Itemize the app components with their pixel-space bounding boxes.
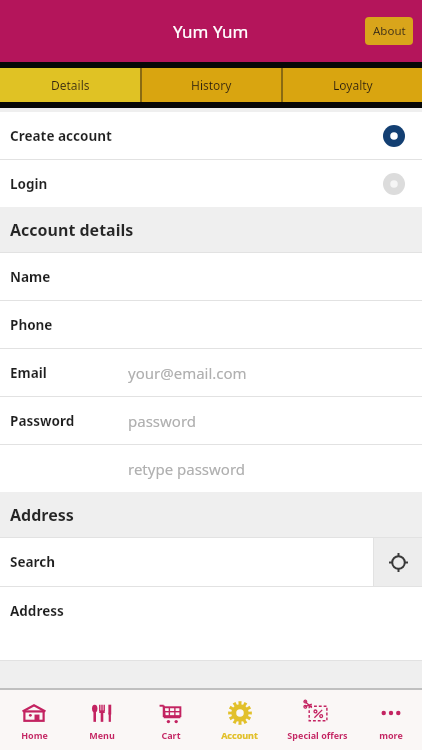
button[interactable]: Use my location (374, 538, 422, 586)
button[interactable]: more (360, 690, 422, 750)
staticText: Account details (10, 219, 134, 241)
staticText: Yum Yum (173, 20, 249, 43)
button[interactable]: Email (0, 349, 422, 396)
staticText: Menu (89, 729, 115, 741)
staticText: Home (21, 729, 48, 741)
button[interactable]: Account (205, 690, 274, 750)
staticText: Details (51, 77, 90, 93)
staticText: Address (10, 504, 74, 526)
button[interactable]: retype password (0, 445, 422, 492)
staticText: Cart (161, 729, 181, 741)
button[interactable]: Cart (136, 690, 205, 750)
button[interactable]: Name (0, 253, 422, 300)
button[interactable]: Create account (0, 112, 422, 159)
staticText: History (191, 77, 232, 93)
staticText: Search (10, 553, 56, 571)
staticText: your@email.com (128, 363, 247, 383)
staticText: password (128, 411, 196, 431)
button[interactable]: Details (0, 68, 140, 102)
button[interactable]: Address (0, 587, 422, 634)
staticText: more (379, 729, 403, 741)
button[interactable]: Phone (0, 301, 422, 348)
staticText: Loyalty (333, 77, 373, 93)
staticText: retype password (128, 459, 246, 479)
staticText: Address (10, 602, 64, 620)
staticText: Email (10, 364, 47, 382)
staticText: Name (10, 268, 51, 286)
staticText: Phone (10, 316, 53, 334)
button[interactable]: About (365, 17, 413, 45)
button[interactable]: History (142, 68, 281, 102)
button[interactable]: Search (0, 538, 373, 586)
staticText: Account (221, 729, 258, 741)
button[interactable]: Home (0, 690, 68, 750)
staticText: Special offers (287, 729, 348, 741)
button[interactable]: Loyalty (283, 68, 422, 102)
staticText: Login (10, 175, 383, 193)
button[interactable]: Special offers (274, 690, 360, 750)
button[interactable]: Password (0, 397, 422, 444)
staticText: Password (10, 412, 75, 430)
staticText: Create account (10, 127, 383, 145)
staticText: About (373, 23, 406, 39)
button[interactable]: Menu (68, 690, 136, 750)
button[interactable]: Login (0, 160, 422, 207)
